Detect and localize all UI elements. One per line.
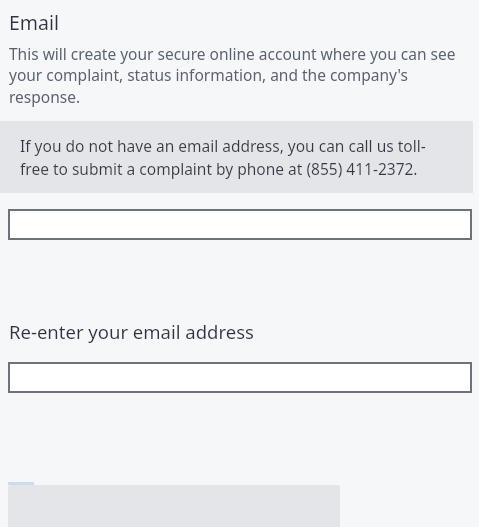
staticText: This will create your secure online acco…	[9, 43, 467, 108]
staticText: Email	[9, 9, 60, 36]
button[interactable]: Re-enter email address input	[8, 362, 472, 393]
staticText: If you do not have an email address, you…	[20, 135, 451, 180]
staticText: Re-enter your email address	[9, 319, 254, 344]
button[interactable]: Email address input	[8, 209, 472, 240]
